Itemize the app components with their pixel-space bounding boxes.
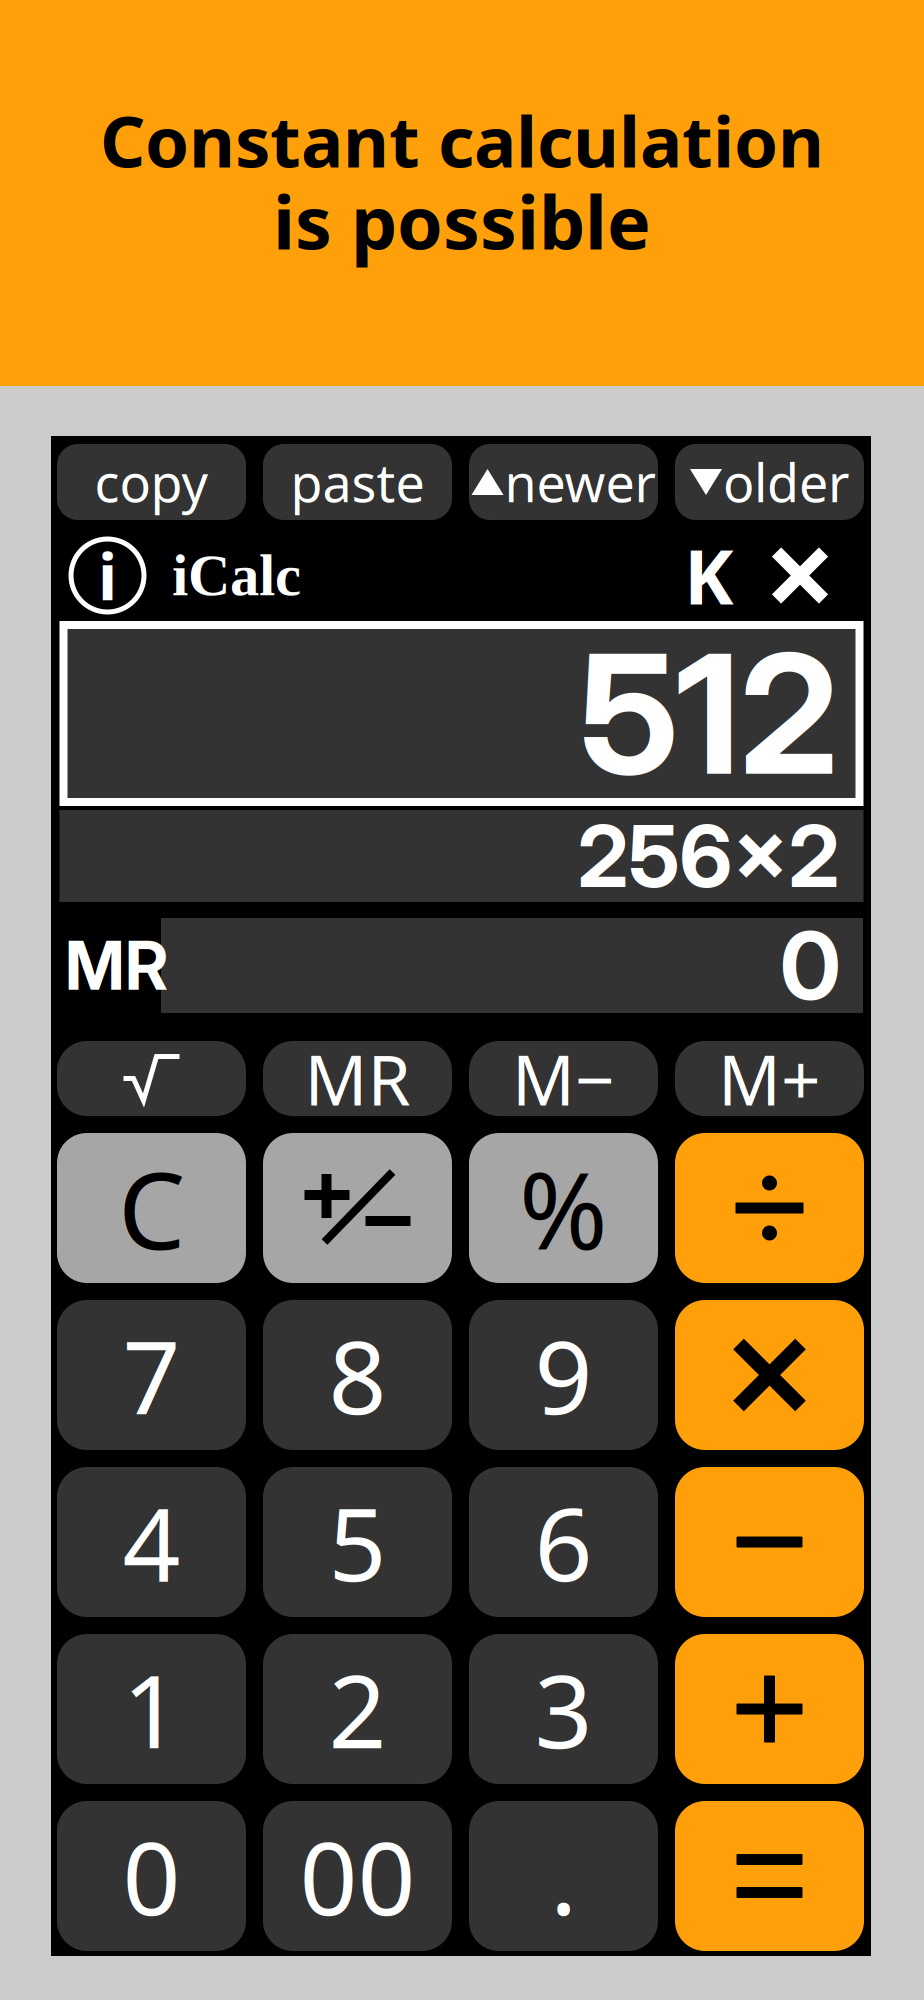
staticText: copy (94, 447, 208, 517)
button[interactable]: M+ (675, 1041, 864, 1116)
staticText: . (550, 1809, 577, 1943)
button[interactable]: 0 (57, 1801, 246, 1951)
staticText: 6 (534, 1475, 592, 1609)
staticText: MR (65, 925, 168, 1006)
staticText: 0 (122, 1809, 180, 1943)
staticText: % (519, 1137, 608, 1279)
button[interactable]: older (675, 444, 864, 520)
button[interactable]: . (469, 1801, 658, 1951)
button[interactable]: paste (263, 444, 452, 520)
staticText: 00 (299, 1809, 415, 1943)
button[interactable]: K (679, 539, 739, 612)
button[interactable]: Info (71, 539, 144, 612)
button[interactable]: 8 (263, 1300, 452, 1450)
staticText: 8 (328, 1308, 386, 1442)
staticText: Constant calculation (100, 93, 824, 187)
button[interactable]: iCalc (172, 539, 332, 612)
staticText: i (98, 533, 117, 618)
staticText: 0 (780, 909, 841, 1022)
staticText: C (118, 1137, 185, 1279)
button[interactable]: 2 (263, 1634, 452, 1784)
button[interactable]: 00 (263, 1801, 452, 1951)
staticText: 3 (534, 1642, 592, 1776)
button[interactable]: Plus (675, 1634, 864, 1784)
staticText: is possible (273, 172, 651, 270)
button[interactable]: M− (469, 1041, 658, 1116)
button[interactable]: MR (263, 1041, 452, 1116)
button[interactable]: Close (762, 539, 838, 612)
button[interactable]: Minus (675, 1467, 864, 1617)
button[interactable]: Square root (57, 1041, 246, 1116)
staticText: 256×2 (577, 804, 839, 908)
button[interactable]: Toggle sign (263, 1133, 452, 1283)
button[interactable]: copy (57, 444, 246, 520)
button[interactable]: Equals (675, 1801, 864, 1951)
staticText: paste (290, 447, 424, 517)
staticText: K (684, 526, 734, 625)
button[interactable]: 9 (469, 1300, 658, 1450)
button[interactable]: 4 (57, 1467, 246, 1617)
button[interactable]: 6 (469, 1467, 658, 1617)
button[interactable]: Multiply (675, 1300, 864, 1450)
button[interactable]: newer (469, 444, 658, 520)
staticText: M+ (718, 1032, 821, 1125)
button[interactable]: Divide (675, 1133, 864, 1283)
button[interactable]: C (57, 1133, 246, 1283)
button[interactable]: 7 (57, 1300, 246, 1450)
staticText: MR (304, 1032, 410, 1125)
staticText: 9 (534, 1308, 592, 1442)
button[interactable]: 5 (263, 1467, 452, 1617)
button[interactable]: 1 (57, 1634, 246, 1784)
staticText: 512 (579, 613, 838, 813)
button[interactable]: 3 (469, 1634, 658, 1784)
staticText: older (723, 447, 849, 517)
staticText: M− (512, 1032, 615, 1125)
staticText: 2 (328, 1642, 386, 1776)
staticText: newer (504, 447, 655, 517)
staticText: 7 (122, 1308, 180, 1442)
button[interactable]: % (469, 1133, 658, 1283)
staticText: 1 (122, 1642, 180, 1776)
staticText: 5 (328, 1475, 386, 1609)
staticText: iCalc (172, 543, 301, 608)
staticText: 4 (122, 1475, 180, 1609)
